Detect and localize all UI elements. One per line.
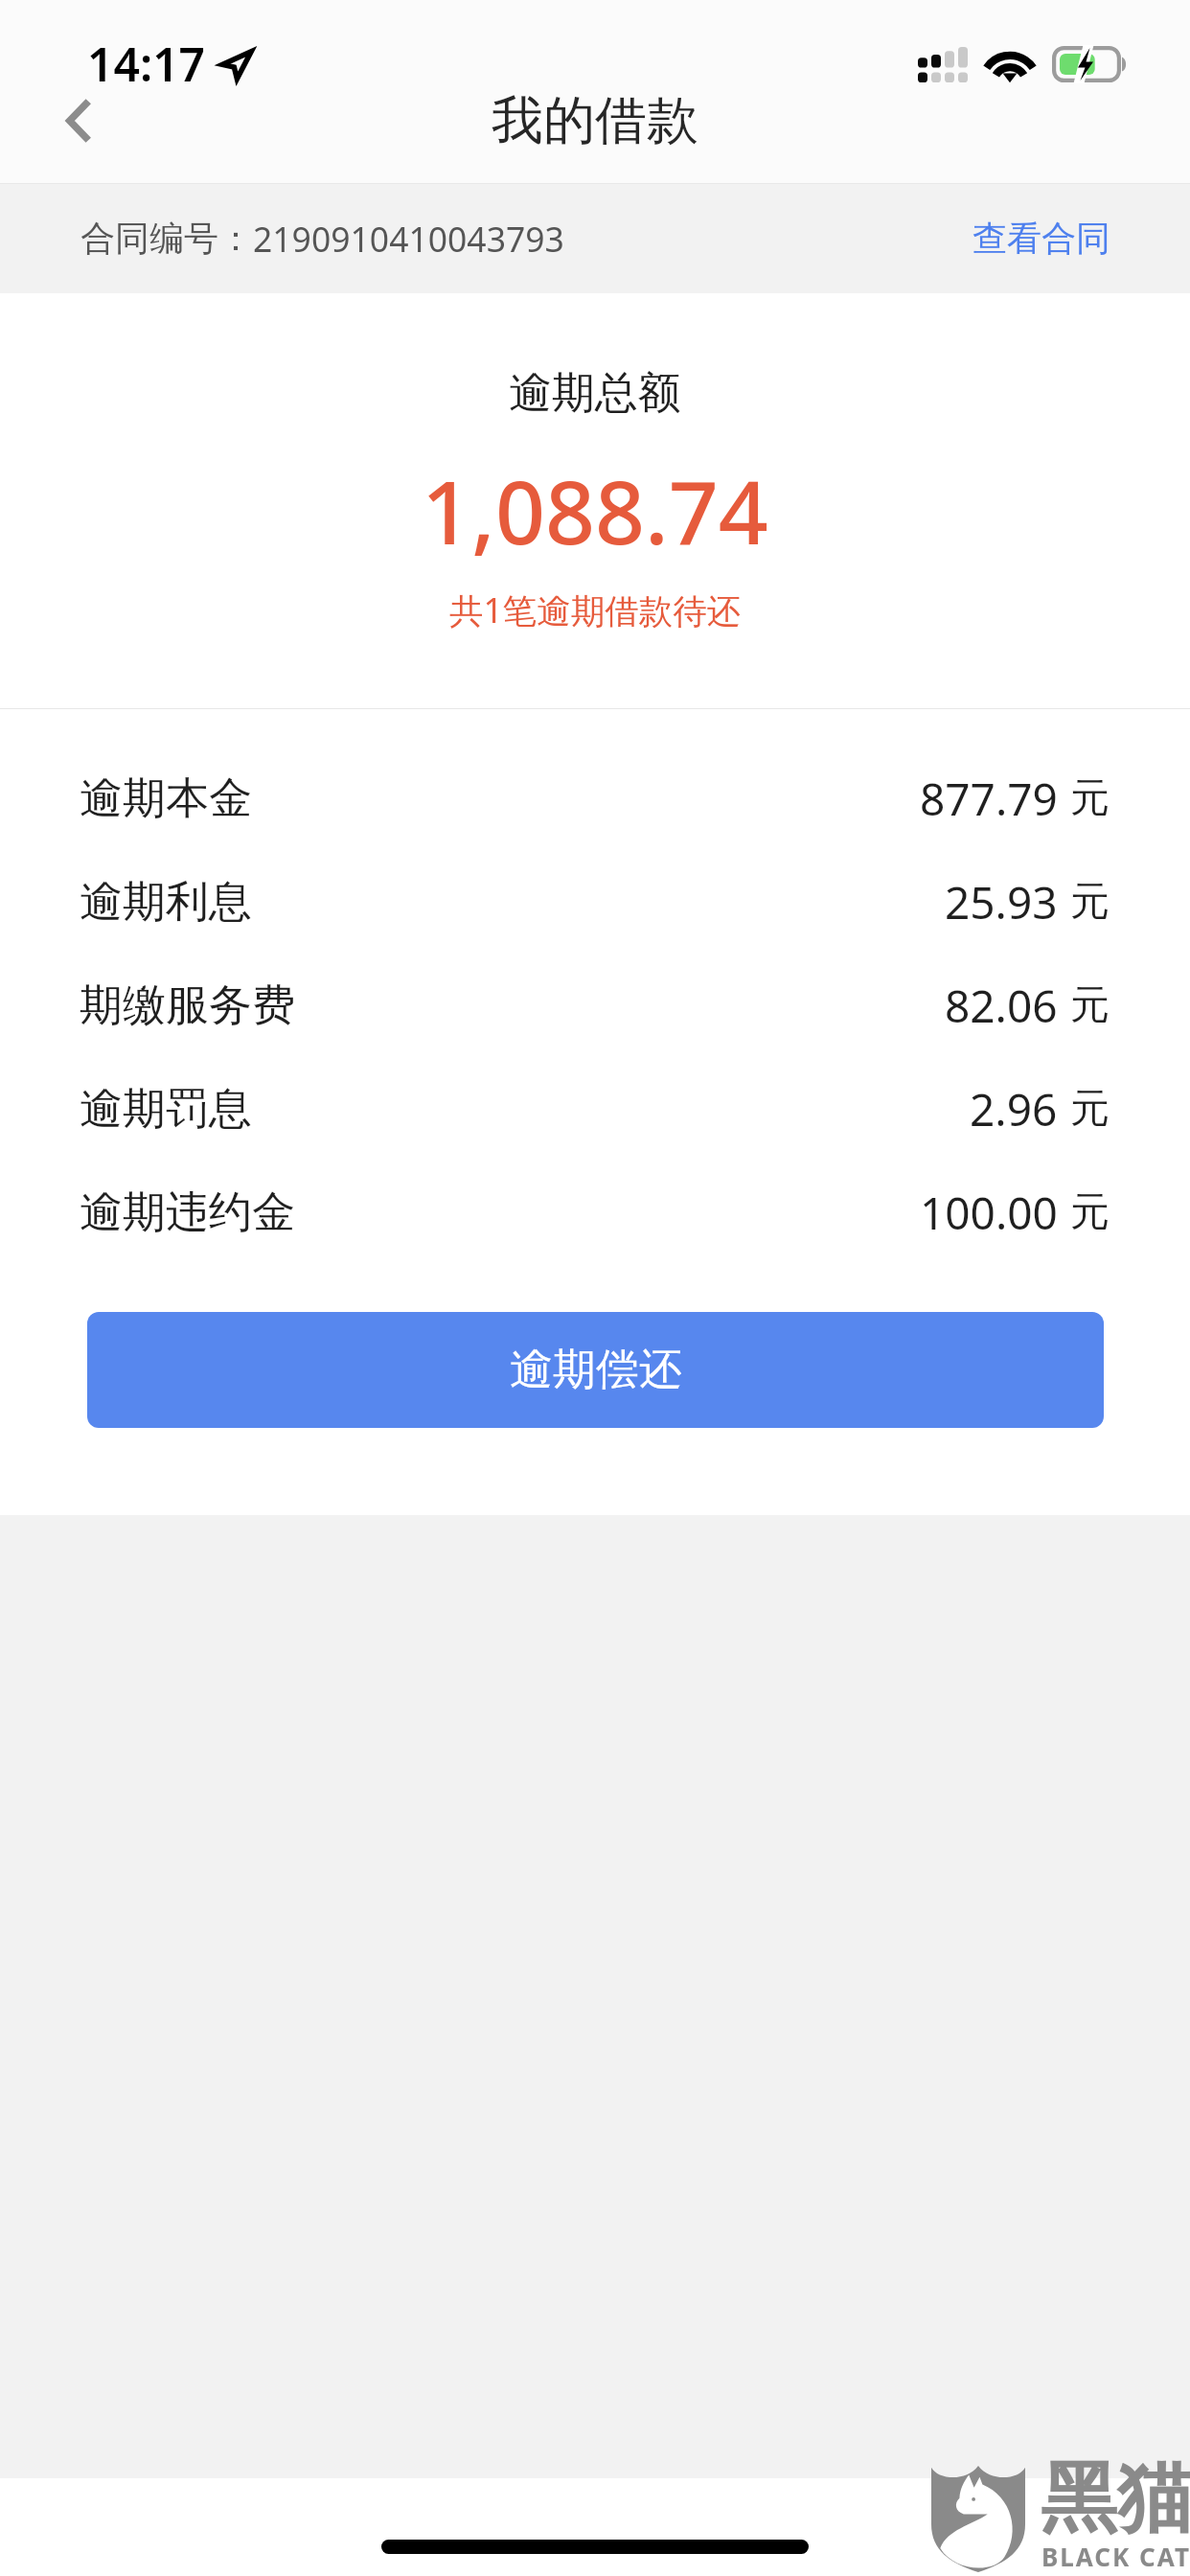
button[interactable]: Back (0, 75, 157, 166)
staticText: 2.96 (970, 1079, 1058, 1139)
staticText: 元 (1070, 1187, 1110, 1237)
staticText: 元 (1070, 877, 1110, 927)
staticText: 逾期违约金 (80, 1185, 295, 1240)
staticText: 2190910410043793 (253, 216, 564, 262)
staticText: 期缴服务费 (80, 978, 295, 1033)
staticText: 合同编号： (80, 217, 253, 260)
button[interactable]: 查看合同 (946, 183, 1110, 293)
staticText: 共1笔逾期借款待还 (449, 586, 742, 632)
staticText: 82.06 (945, 976, 1058, 1036)
staticText: 100.00 (920, 1183, 1058, 1243)
staticText: 查看合同 (973, 217, 1110, 260)
staticText: 1,088.74 (422, 451, 768, 570)
staticText: 元 (1070, 773, 1110, 823)
staticText: 逾期利息 (80, 875, 252, 930)
staticText: 元 (1070, 1084, 1110, 1134)
staticText: 逾期偿还 (510, 1343, 682, 1397)
staticText: 14:17 (87, 33, 206, 95)
staticText: 逾期总额 (509, 366, 681, 421)
staticText: 黑猫 (1041, 2450, 1190, 2547)
staticText: 逾期本金 (80, 771, 252, 826)
staticText: 我的借款 (492, 88, 698, 153)
staticText: 877.79 (920, 769, 1058, 829)
button[interactable]: 逾期偿还 (87, 1312, 1104, 1428)
staticText: 元 (1070, 980, 1110, 1030)
staticText: 逾期罚息 (80, 1082, 252, 1137)
staticText: 25.93 (945, 872, 1058, 932)
staticText: BLACK CAT (1041, 2540, 1190, 2573)
